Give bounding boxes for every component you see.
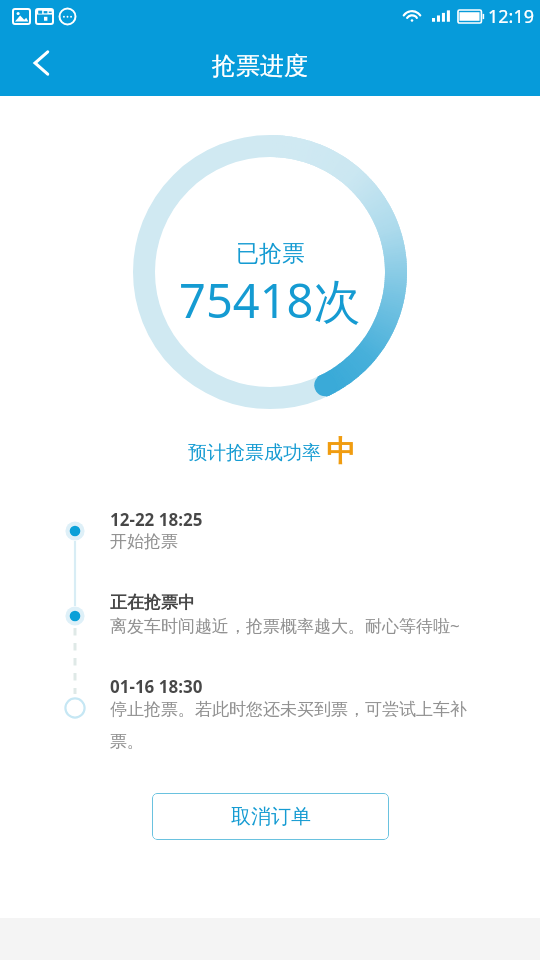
staticText: 12:19: [488, 4, 535, 29]
staticText: 抢票进度: [212, 51, 308, 81]
staticText: 01-16 18:30: [110, 675, 203, 698]
staticText: 75418次: [179, 268, 361, 332]
staticText: 12-22 18:25: [110, 508, 203, 531]
staticText: 预计抢票成功率: [188, 441, 321, 465]
button[interactable]: Back: [18, 38, 66, 88]
staticText: 正在抢票中: [110, 592, 195, 613]
staticText: 已抢票: [236, 239, 305, 268]
staticText: 离发车时间越近，抢票概率越大。耐心等待啦~: [110, 614, 460, 637]
staticText: 停止抢票。若此时您还未买到票，可尝试上车补票。: [110, 699, 476, 752]
staticText: 取消订单: [231, 804, 311, 829]
button[interactable]: 取消订单: [152, 793, 389, 840]
staticText: 中: [326, 433, 355, 470]
staticText: 开始抢票: [110, 531, 178, 552]
